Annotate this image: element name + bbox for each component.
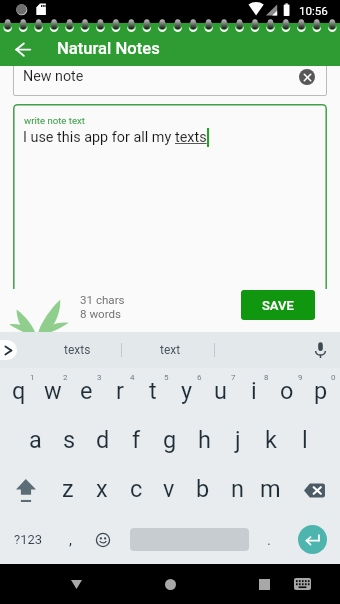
- staticText: 2: [63, 373, 68, 382]
- staticText: b: [196, 475, 210, 503]
- staticText: o: [280, 377, 294, 405]
- button[interactable]: s: [52, 415, 86, 464]
- staticText: k: [265, 426, 277, 454]
- button[interactable]: f: [119, 415, 153, 464]
- staticText: 3: [97, 373, 102, 382]
- button[interactable]: Emoji: [85, 515, 121, 564]
- button[interactable]: g: [153, 415, 187, 464]
- staticText: 7: [231, 373, 236, 382]
- staticText: 1: [30, 373, 35, 382]
- staticText: write note text: [24, 115, 85, 126]
- staticText: t: [149, 377, 157, 405]
- button[interactable]: w: [36, 366, 70, 415]
- button[interactable]: p: [304, 366, 338, 415]
- staticText: c: [130, 475, 143, 503]
- staticText: q: [12, 377, 26, 405]
- staticText: u: [214, 377, 227, 405]
- staticText: l: [302, 426, 308, 454]
- staticText: SAVE: [262, 298, 294, 313]
- button[interactable]: m: [253, 464, 287, 513]
- button[interactable]: Back: [7, 34, 38, 65]
- staticText: 5: [164, 373, 169, 382]
- staticText: z: [62, 475, 74, 503]
- button[interactable]: text: [133, 332, 208, 368]
- staticText: I use this app for all my: [23, 129, 175, 146]
- staticText: f: [132, 426, 141, 454]
- staticText: h: [198, 426, 211, 454]
- button[interactable]: Voice input: [300, 332, 340, 368]
- staticText: s: [63, 426, 76, 454]
- button[interactable]: ,: [53, 515, 87, 564]
- staticText: ?123: [14, 532, 43, 547]
- button[interactable]: More suggestions: [0, 340, 17, 360]
- staticText: d: [96, 426, 110, 454]
- button[interactable]: o: [270, 366, 304, 415]
- staticText: m: [260, 475, 281, 503]
- button[interactable]: r: [103, 366, 137, 415]
- button[interactable]: v: [152, 464, 186, 513]
- staticText: i: [251, 377, 257, 405]
- staticText: 4: [130, 373, 135, 382]
- button[interactable]: Home: [141, 564, 199, 604]
- button[interactable]: l: [288, 415, 322, 464]
- button[interactable]: i: [237, 366, 271, 415]
- staticText: 6: [197, 373, 202, 382]
- button[interactable]: Recent apps: [235, 564, 293, 604]
- staticText: 8: [264, 373, 269, 382]
- button[interactable]: u: [203, 366, 237, 415]
- staticText: text: [160, 343, 181, 357]
- staticText: 0: [331, 373, 336, 382]
- staticText: 9: [298, 373, 303, 382]
- button[interactable]: j: [221, 415, 255, 464]
- button[interactable]: Clear text: [299, 69, 315, 85]
- button[interactable]: SAVE: [241, 290, 315, 320]
- button[interactable]: b: [186, 464, 220, 513]
- button[interactable]: Enter: [288, 515, 340, 564]
- staticText: w: [44, 377, 62, 405]
- button[interactable]: e: [69, 366, 103, 415]
- button[interactable]: Backspace: [289, 466, 340, 515]
- button[interactable]: .: [254, 515, 284, 564]
- button[interactable]: Space: [122, 515, 256, 564]
- staticText: p: [314, 377, 328, 405]
- button[interactable]: Switch keyboard: [284, 564, 321, 604]
- button[interactable]: Shift: [0, 466, 51, 515]
- button[interactable]: k: [254, 415, 288, 464]
- button[interactable]: y: [170, 366, 204, 415]
- button[interactable]: d: [86, 415, 120, 464]
- button[interactable]: q: [2, 366, 36, 415]
- staticText: .: [267, 531, 271, 549]
- button[interactable]: z: [51, 464, 85, 513]
- staticText: texts: [64, 343, 91, 357]
- staticText: texts: [175, 129, 207, 146]
- button[interactable]: x: [85, 464, 119, 513]
- staticText: n: [231, 475, 244, 503]
- button[interactable]: t: [136, 366, 170, 415]
- staticText: ,: [69, 531, 72, 549]
- button[interactable]: Back: [47, 564, 105, 604]
- staticText: v: [163, 475, 175, 503]
- staticText: y: [181, 377, 193, 405]
- button[interactable]: h: [187, 415, 221, 464]
- button[interactable]: texts: [40, 332, 115, 368]
- staticText: 31 chars: [80, 293, 125, 307]
- button[interactable]: ?123: [0, 515, 56, 564]
- staticText: g: [163, 426, 177, 454]
- staticText: Natural Notes: [57, 39, 160, 58]
- button[interactable]: a: [18, 415, 52, 464]
- staticText: a: [29, 426, 42, 454]
- staticText: 8 words: [80, 307, 122, 321]
- staticText: x: [96, 475, 108, 503]
- button[interactable]: c: [119, 464, 153, 513]
- staticText: r: [116, 377, 124, 405]
- staticText: 10:56: [299, 4, 328, 18]
- staticText: j: [235, 426, 241, 454]
- staticText: New note: [23, 68, 84, 85]
- button[interactable]: n: [220, 464, 254, 513]
- staticText: e: [80, 377, 93, 405]
